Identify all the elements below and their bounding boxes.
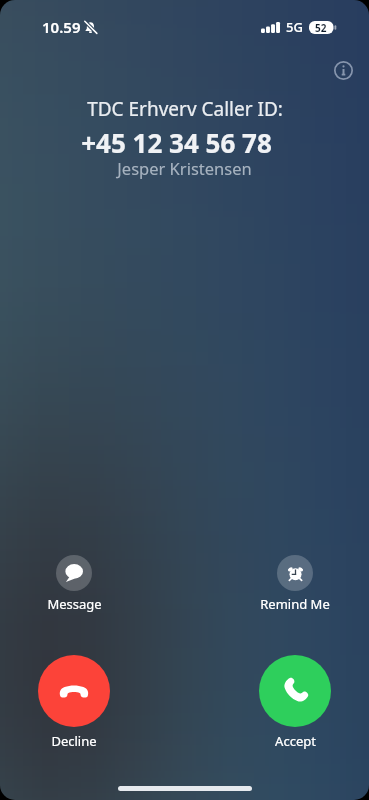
button[interactable]: Remind Me <box>240 555 350 613</box>
button[interactable]: Message <box>19 555 129 613</box>
button[interactable]: Call info <box>327 54 359 86</box>
staticText: TDC Erhverv Caller ID: <box>87 96 283 122</box>
staticText: 5G <box>286 18 303 36</box>
staticText: Accept <box>275 732 316 750</box>
staticText: 10.59 <box>42 17 81 37</box>
staticText: Jesper Kristensen <box>117 157 252 179</box>
button[interactable]: Accept <box>240 655 350 750</box>
staticText: +45 12 34 56 78 <box>81 125 272 160</box>
button[interactable]: Decline <box>19 655 129 750</box>
staticText: Decline <box>51 732 97 750</box>
staticText: 52 <box>315 21 327 34</box>
staticText: Remind Me <box>260 595 330 613</box>
staticText: Message <box>47 595 102 613</box>
